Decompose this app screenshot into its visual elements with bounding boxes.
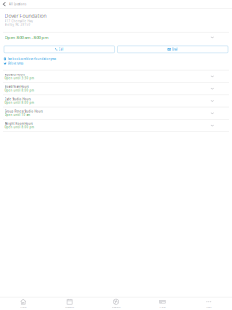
button[interactable]: Open 8:00 am - 8:00 pm <box>0 33 232 46</box>
staticText: @doverymca <box>8 62 23 65</box>
button[interactable]: Programs <box>93 298 139 310</box>
staticText: Call <box>59 47 64 51</box>
button[interactable]: @doverymca <box>4 62 23 65</box>
staticText: Open until 10 am <box>4 113 29 117</box>
button[interactable]: Home <box>0 298 46 310</box>
button[interactable]: Call <box>4 46 114 53</box>
staticText: Weight Room Hours <box>4 122 32 125</box>
staticText: Cycle Studio Hours <box>4 97 30 101</box>
staticText: Open 8:00 am - 8:00 pm <box>4 34 48 40</box>
staticText: 417 Cherryville Hwy <box>4 19 32 23</box>
staticText: facebook.com/doverfoundationymca <box>8 57 56 61</box>
button[interactable]: Aquatics Hours <box>0 70 232 83</box>
staticText: Group Fitness Studio Hours <box>4 110 42 113</box>
staticText: Open until 8:00 pm <box>4 125 33 129</box>
staticText: Schedules <box>65 305 74 309</box>
staticText: Board/Team Hours <box>4 85 28 89</box>
staticText: Email <box>172 47 178 51</box>
button[interactable]: Email <box>117 46 228 53</box>
button[interactable]: Board/Team Hours <box>0 83 232 95</box>
staticText: Programs <box>111 305 120 309</box>
staticText: All Locations <box>9 2 26 6</box>
button[interactable]: Schedules <box>46 298 93 310</box>
staticText: Open until 8:00 pm <box>4 89 33 92</box>
staticText: More <box>206 305 211 309</box>
button[interactable]: facebook.com/doverfoundationymca <box>4 57 56 61</box>
button[interactable]: Cycle Studio Hours <box>0 95 232 107</box>
button[interactable]: Weight Room Hours <box>0 120 232 132</box>
button[interactable]: Cards <box>139 298 186 310</box>
staticText: Open until 8:00 pm <box>4 101 33 104</box>
staticText: Shelby, NC 28150 <box>4 23 30 26</box>
staticText: Dover Foundation <box>4 12 46 19</box>
button[interactable]: Group Fitness Studio Hours <box>0 107 232 120</box>
button[interactable]: More <box>186 298 232 310</box>
button[interactable]: All Locations <box>0 0 232 8</box>
staticText: Aquatics Hours <box>4 73 24 76</box>
staticText: Cards <box>159 305 165 309</box>
staticText: Open until 3:30 pm <box>4 76 33 80</box>
staticText: Home <box>20 305 26 309</box>
